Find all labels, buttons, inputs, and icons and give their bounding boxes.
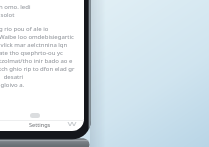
staticText: gloivo a. bbox=[0, 81, 25, 89]
staticText: tzolmat/tho inir bado ao e bbox=[0, 57, 73, 65]
staticText: vlick mar aelctnnina lqn bbox=[0, 41, 68, 49]
staticText: g rio pou of ale io bbox=[0, 25, 49, 33]
staticText: desatri bbox=[0, 73, 24, 81]
staticText: h omo. ledi bbox=[0, 3, 31, 11]
staticText: ate tho qsephrto-ou yc bbox=[0, 49, 63, 57]
staticText: tch ghio rip to dfon elad gr bbox=[0, 65, 75, 73]
button[interactable]: Network bbox=[65, 119, 78, 128]
staticText: Settings bbox=[29, 121, 51, 129]
button[interactable]: Settings bbox=[28, 120, 52, 129]
staticText: solot bbox=[0, 11, 15, 19]
staticText: Waibe loo omdebisiegartic bbox=[0, 33, 74, 41]
